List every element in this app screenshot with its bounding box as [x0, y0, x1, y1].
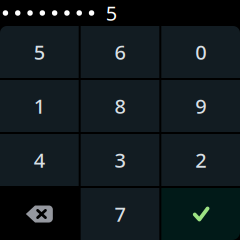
button[interactable]: 1 [0, 80, 79, 132]
staticText: 4 [34, 147, 45, 173]
staticText: 8 [114, 93, 125, 119]
staticText: 2 [195, 147, 206, 173]
staticText: 0 [195, 39, 206, 65]
button[interactable]: 2 [161, 134, 240, 186]
button[interactable]: 3 [81, 134, 159, 186]
staticText: 5 [106, 0, 117, 26]
button[interactable]: 0 [161, 26, 240, 78]
staticText: 6 [114, 39, 125, 65]
button[interactable]: Confirm passcode [161, 188, 240, 240]
staticText: 1 [34, 93, 45, 119]
button[interactable]: Delete [0, 188, 79, 240]
staticText: 7 [114, 201, 125, 227]
button[interactable]: 4 [0, 134, 79, 186]
button[interactable]: 9 [161, 80, 240, 132]
button[interactable]: 5 [0, 26, 79, 78]
button[interactable]: 6 [81, 26, 159, 78]
staticText: 9 [195, 93, 206, 119]
staticText: 5 [34, 39, 45, 65]
button[interactable]: 8 [81, 80, 159, 132]
staticText: 3 [114, 147, 125, 173]
button[interactable]: 7 [81, 188, 159, 240]
